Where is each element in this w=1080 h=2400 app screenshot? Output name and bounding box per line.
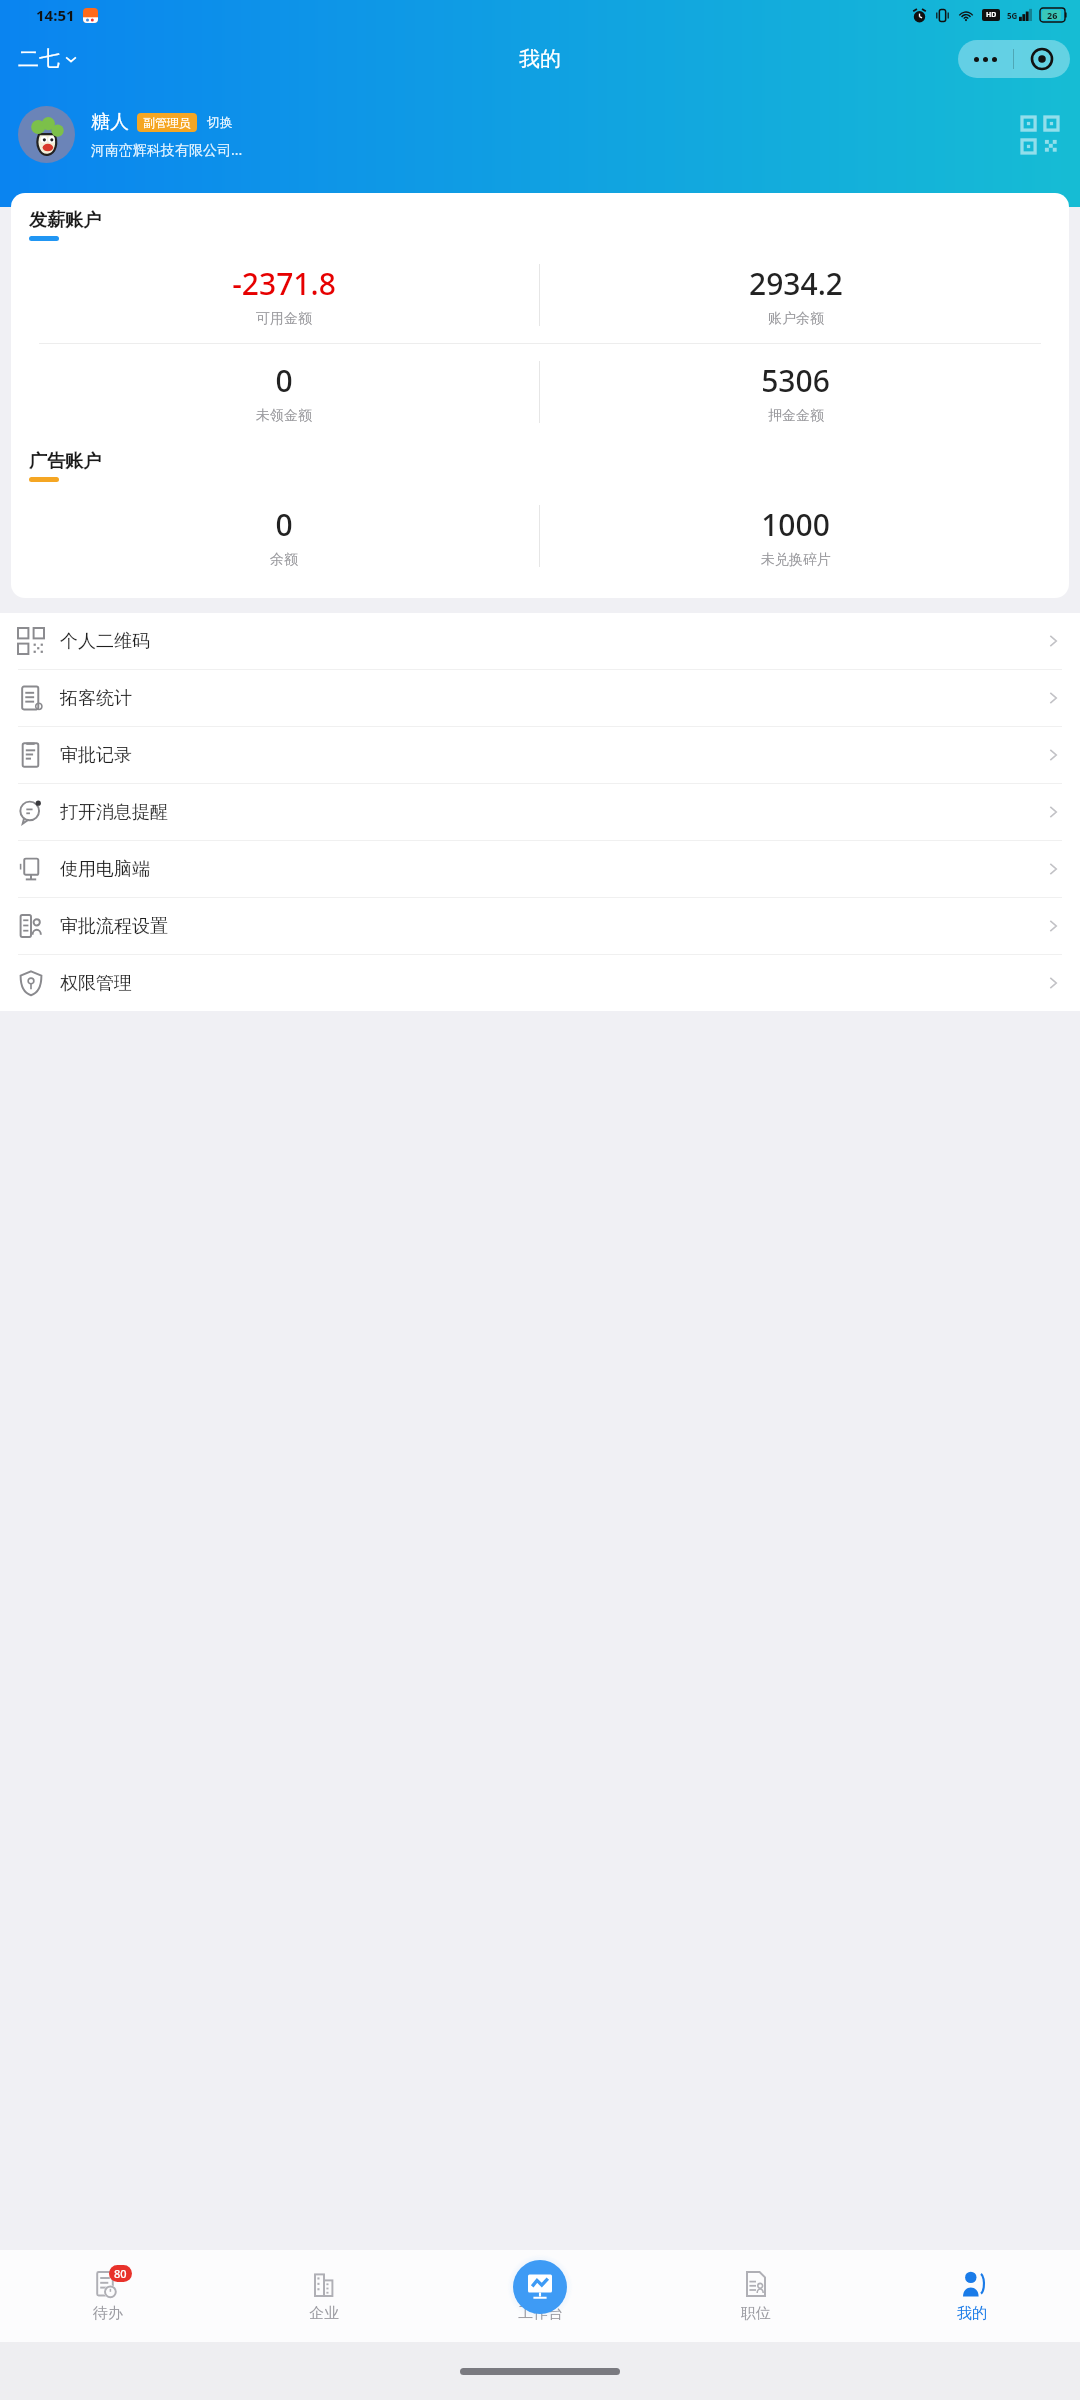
button[interactable]: 工作台 Workbench: [513, 2260, 567, 2314]
staticText: HD: [986, 10, 997, 20]
button[interactable]: 审批流程设置: [0, 898, 1080, 954]
staticText: 待办: [93, 2304, 123, 2323]
button[interactable]: 使用电脑端: [0, 841, 1080, 897]
staticText: 副管理员: [143, 115, 191, 130]
staticText: 0: [275, 504, 293, 545]
staticText: 企业: [309, 2304, 339, 2323]
staticText: 职位: [741, 2304, 771, 2323]
button[interactable]: 1000: [540, 504, 1051, 569]
staticText: 我的: [519, 46, 561, 72]
staticText: 余额: [270, 551, 298, 569]
staticText: 账户余额: [768, 310, 824, 328]
staticText: 26: [1047, 9, 1058, 21]
button[interactable]: 拓客统计: [0, 670, 1080, 726]
staticText: 拓客统计: [60, 687, 1044, 710]
button[interactable]: 5306: [540, 360, 1051, 425]
staticText: 5G: [1007, 10, 1018, 21]
staticText: 工作台: [518, 2304, 563, 2323]
staticText: 糖人: [91, 110, 129, 134]
staticText: 权限管理: [60, 972, 1044, 995]
staticText: 发薪账户: [29, 209, 101, 232]
staticText: 2934.2: [749, 263, 843, 304]
staticText: -2371.8: [232, 263, 336, 304]
button[interactable]: 企业: [216, 2250, 432, 2342]
button[interactable]: 二七: [10, 41, 86, 77]
button[interactable]: Avatar: [18, 106, 75, 163]
staticText: 使用电脑端: [60, 858, 1044, 881]
button[interactable]: QR code: [1018, 113, 1062, 157]
button[interactable]: 我的: [864, 2250, 1080, 2342]
staticText: 审批流程设置: [60, 915, 1044, 938]
button[interactable]: 审批记录: [0, 727, 1080, 783]
staticText: 个人二维码: [60, 630, 1044, 653]
button[interactable]: 职位: [648, 2250, 864, 2342]
staticText: 0: [275, 360, 293, 401]
button[interactable]: 个人二维码: [0, 613, 1080, 669]
button[interactable]: 2934.2: [540, 263, 1051, 328]
button[interactable]: 打开消息提醒: [0, 784, 1080, 840]
staticText: 二七: [18, 46, 60, 72]
staticText: 80: [114, 2266, 127, 2281]
staticText: 未领金额: [256, 407, 312, 425]
staticText: 广告账户: [29, 450, 101, 473]
button[interactable]: 80: [0, 2250, 216, 2342]
staticText: 可用金额: [256, 310, 312, 328]
staticText: 切换: [207, 114, 233, 130]
staticText: 5306: [761, 360, 830, 401]
staticText: 我的: [957, 2304, 987, 2323]
staticText: 河南峦辉科技有限公司...: [91, 140, 243, 159]
button[interactable]: 0: [29, 360, 539, 425]
button[interactable]: 切换: [205, 112, 235, 132]
staticText: 押金金额: [768, 407, 824, 425]
button[interactable]: More options: [958, 40, 1013, 78]
staticText: 审批记录: [60, 744, 1044, 767]
button[interactable]: 权限管理: [0, 955, 1080, 1011]
staticText: 1000: [761, 504, 830, 545]
button[interactable]: -2371.8: [29, 263, 539, 328]
staticText: 未兑换碎片: [761, 551, 831, 569]
staticText: 打开消息提醒: [60, 801, 1044, 824]
button[interactable]: 0: [29, 504, 539, 569]
button[interactable]: Close: [1014, 40, 1070, 78]
button[interactable]: 工作台: [432, 2250, 648, 2342]
staticText: 14:51: [36, 5, 75, 25]
